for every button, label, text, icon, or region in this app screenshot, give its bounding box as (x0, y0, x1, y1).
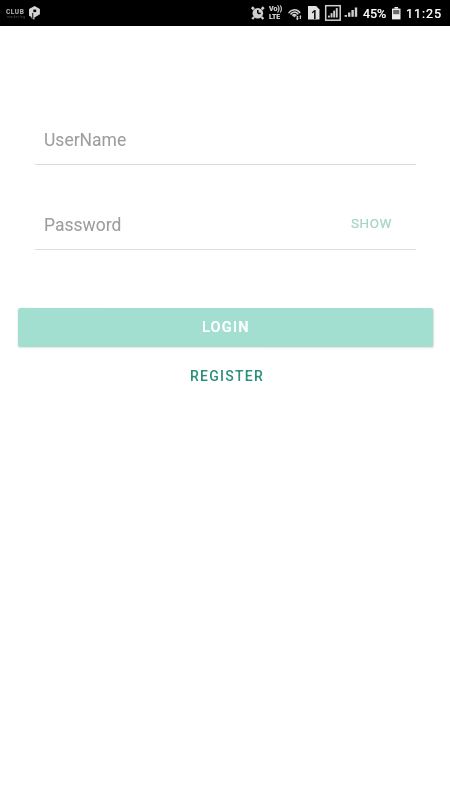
button[interactable]: UserName (35, 117, 416, 161)
staticText: 45% (363, 6, 387, 21)
staticText: CLUB (6, 8, 25, 16)
staticText: 1 (311, 7, 318, 21)
staticText: REGISTER (190, 368, 264, 384)
button[interactable]: SHOW (343, 209, 400, 237)
button[interactable]: LOGIN (18, 308, 433, 347)
staticText: LTE (269, 13, 281, 21)
button[interactable]: Password (35, 202, 416, 246)
staticText: LOGIN (202, 319, 250, 336)
staticText: SHOW (351, 215, 392, 231)
staticText: Password (44, 215, 122, 236)
staticText: 11:25 (406, 6, 443, 21)
staticText: marketing (7, 15, 26, 19)
button[interactable]: REGISTER (168, 360, 286, 392)
staticText: UserName (44, 130, 127, 151)
staticText: Vo)) (269, 5, 283, 13)
